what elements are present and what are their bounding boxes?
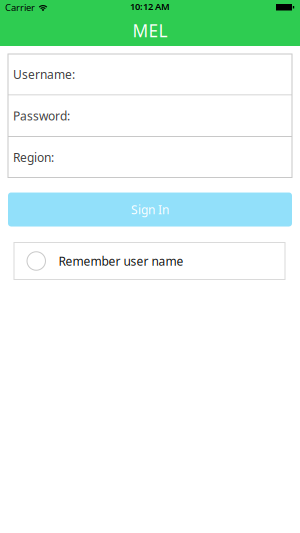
staticText: MEL (132, 19, 167, 42)
button[interactable]: Sign In (8, 192, 292, 226)
staticText: Region: (13, 149, 54, 165)
staticText: Username: (13, 66, 75, 82)
staticText: Carrier (5, 1, 35, 14)
staticText: 10:12 AM (130, 0, 170, 13)
staticText: Sign In (131, 201, 169, 217)
button[interactable]: Username: (8, 54, 292, 94)
staticText: Password: (13, 108, 70, 124)
staticText: Remember user name (58, 253, 183, 269)
button[interactable]: Remember user name (14, 242, 285, 279)
button[interactable]: Password: (8, 95, 292, 136)
button[interactable]: Region: (8, 137, 292, 177)
